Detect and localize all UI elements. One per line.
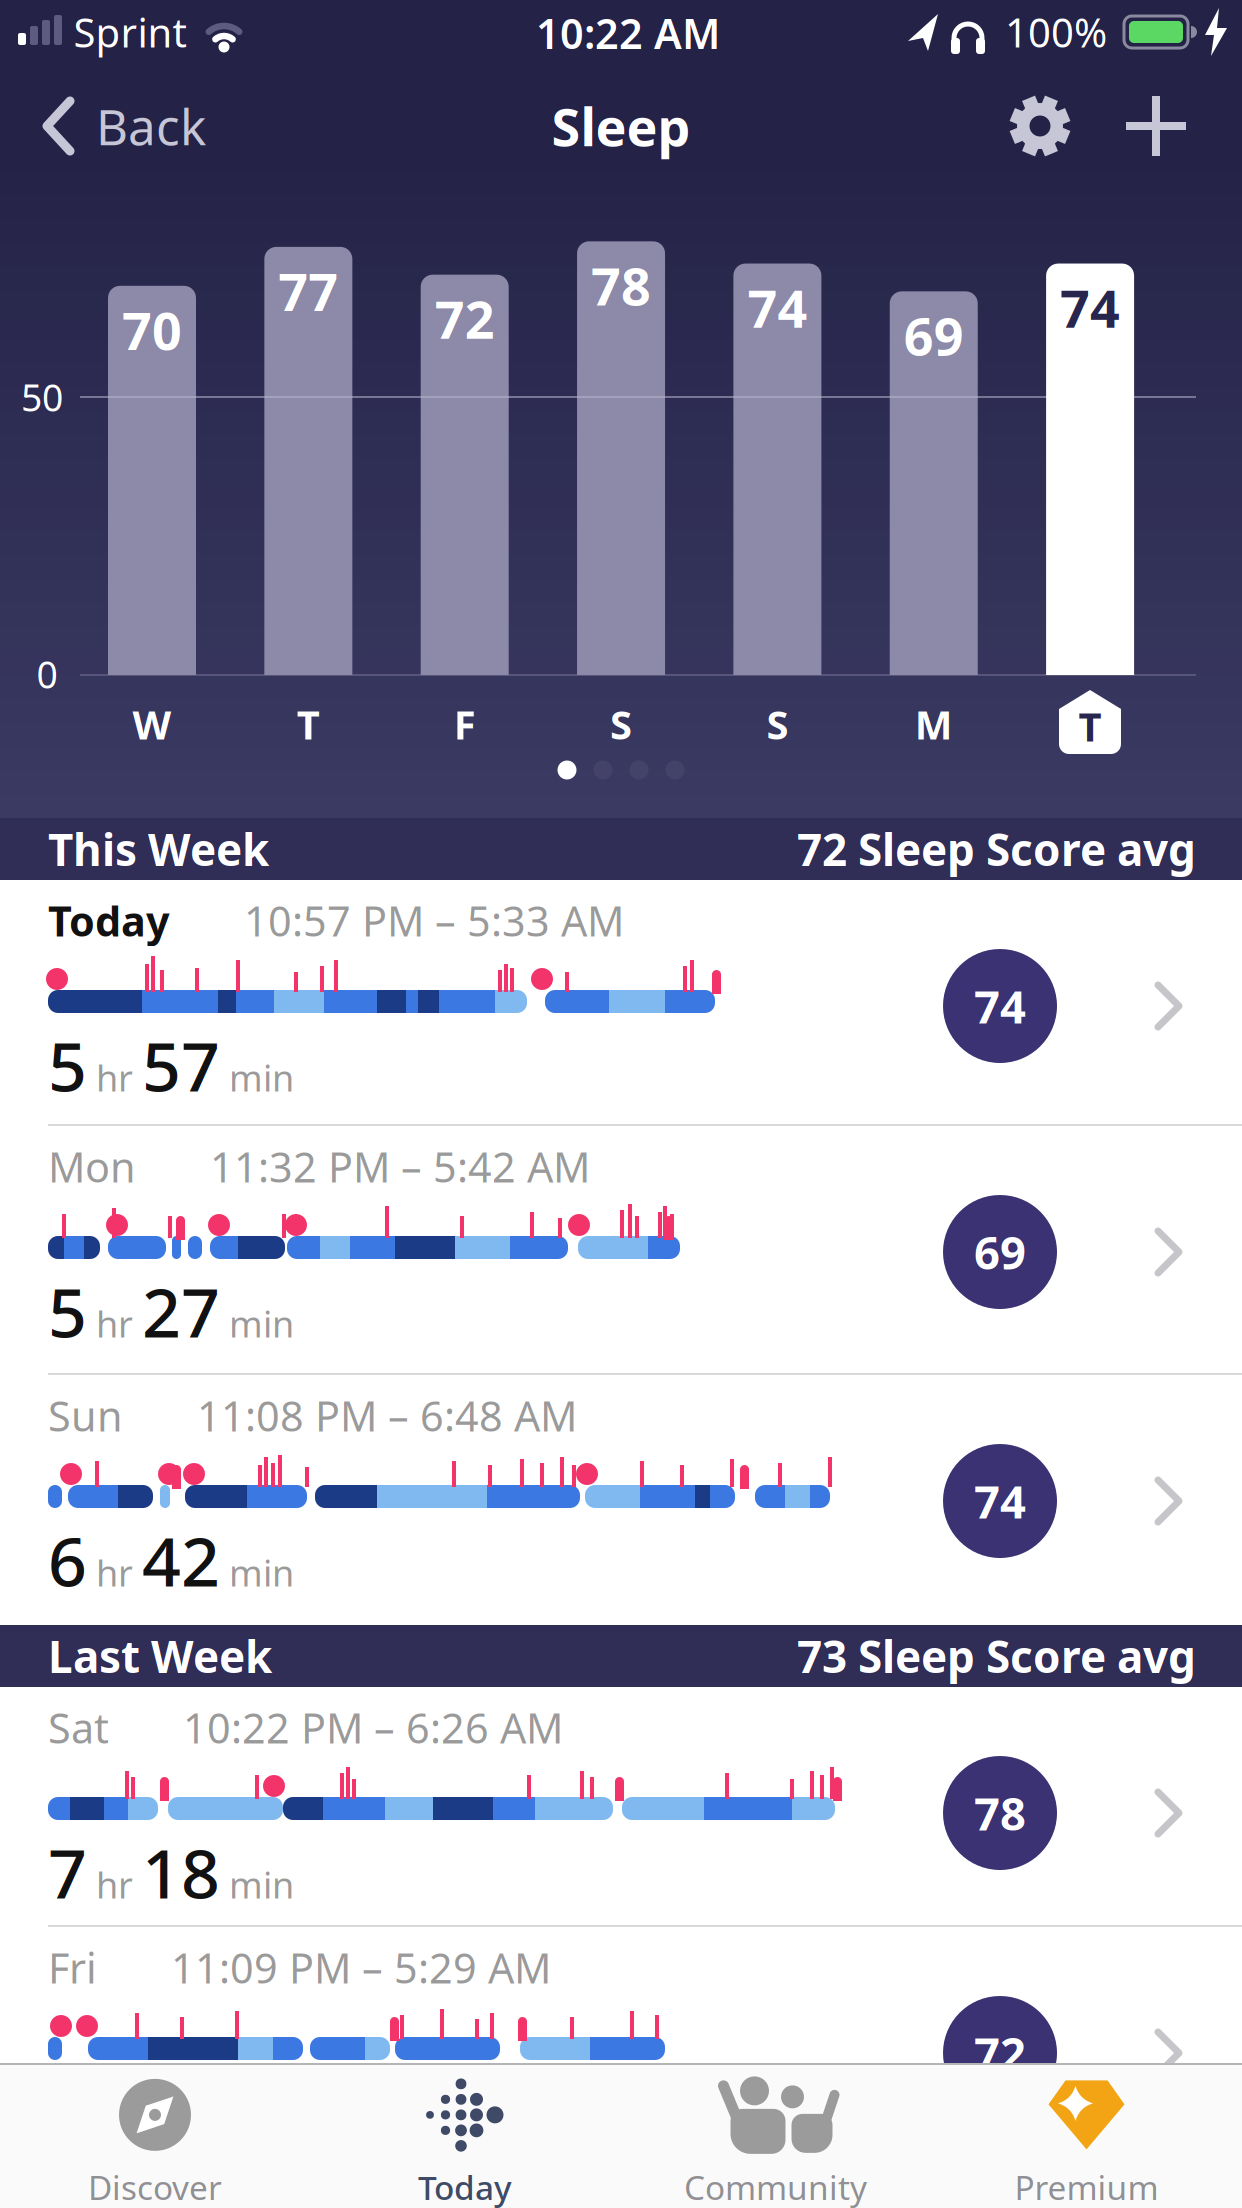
staticText: 11:08 PM – 6:48 AM: [197, 1388, 577, 1443]
staticText: hr: [96, 1054, 133, 1101]
button[interactable]: Premium: [931, 2073, 1242, 2208]
staticText: min: [229, 1861, 294, 1908]
staticText: Today: [48, 893, 170, 948]
staticText: 10:57 PM – 5:33 AM: [244, 893, 624, 948]
button[interactable]: [1122, 92, 1190, 160]
staticText: 5: [48, 1266, 87, 1356]
staticText: Discover: [88, 2165, 222, 2208]
button[interactable]: Back: [40, 91, 206, 161]
staticText: Sat: [48, 1700, 109, 1755]
staticText: 74: [747, 273, 807, 342]
staticText: 100%: [1005, 5, 1107, 58]
staticText: 69: [974, 1222, 1026, 1282]
staticText: min: [229, 1300, 294, 1347]
staticText: 70: [122, 295, 182, 364]
staticText: Sprint: [73, 5, 186, 58]
staticText: Last Week: [48, 1627, 272, 1685]
staticText: 11:32 PM – 5:42 AM: [210, 1139, 590, 1194]
staticText: 05: [142, 2067, 220, 2157]
staticText: 72: [974, 2023, 1026, 2083]
staticText: 27: [142, 1266, 220, 1356]
staticText: 42: [142, 1515, 220, 1605]
button[interactable]: Community: [620, 2073, 931, 2208]
staticText: W: [132, 697, 171, 750]
staticText: 10:22 AM: [536, 6, 720, 60]
staticText: This Week: [48, 820, 269, 878]
button[interactable]: Discover: [0, 2073, 310, 2208]
staticText: 10:22 PM – 6:26 AM: [183, 1700, 563, 1755]
staticText: T: [297, 697, 320, 750]
staticText: Premium: [1014, 2165, 1158, 2208]
button[interactable]: [1002, 88, 1078, 164]
staticText: 78: [591, 251, 651, 320]
staticText: Sleep: [551, 91, 690, 161]
staticText: hr: [96, 1861, 133, 1908]
staticText: Fri: [48, 1940, 97, 1995]
staticText: Back: [96, 93, 206, 159]
staticText: 18: [142, 1827, 220, 1917]
staticText: 74: [1060, 273, 1120, 342]
staticText: hr: [96, 1300, 133, 1347]
staticText: 77: [278, 256, 338, 325]
staticText: S: [610, 697, 632, 750]
staticText: 69: [904, 301, 964, 370]
staticText: Community: [684, 2165, 867, 2208]
button[interactable]: Sun: [0, 1375, 1242, 1625]
staticText: min: [229, 1054, 294, 1101]
button[interactable]: Today: [0, 880, 1242, 1124]
button[interactable]: Mon: [0, 1126, 1242, 1375]
staticText: Mon: [48, 1139, 136, 1194]
button[interactable]: Fri: [0, 1927, 1242, 2063]
staticText: hr: [96, 1549, 133, 1596]
staticText: 72: [435, 284, 495, 353]
staticText: 5: [48, 1020, 87, 1110]
staticText: 11:09 PM – 5:29 AM: [171, 1940, 551, 1995]
staticText: 6: [48, 1515, 87, 1605]
staticText: 73 Sleep Score avg: [797, 1627, 1196, 1685]
staticText: 7: [48, 1827, 87, 1917]
staticText: 0: [36, 649, 57, 699]
staticText: M: [915, 697, 953, 750]
staticText: 72 Sleep Score avg: [797, 820, 1196, 878]
staticText: hr: [96, 2101, 133, 2148]
staticText: T: [1078, 699, 1101, 752]
staticText: F: [454, 697, 476, 750]
staticText: 78: [974, 1783, 1026, 1843]
staticText: 50: [21, 372, 63, 422]
staticText: min: [229, 1549, 294, 1596]
staticText: 74: [974, 976, 1026, 1036]
staticText: Today: [418, 2165, 512, 2208]
button[interactable]: Today: [310, 2073, 620, 2208]
staticText: S: [766, 697, 788, 750]
staticText: Sun: [48, 1388, 123, 1443]
staticText: 74: [974, 1471, 1026, 1531]
button[interactable]: Sat: [0, 1687, 1242, 1925]
staticText: 57: [142, 1020, 220, 1110]
